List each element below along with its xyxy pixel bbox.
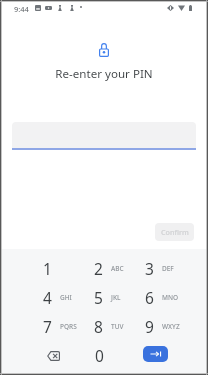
staticText: TUV: [111, 322, 124, 331]
staticText: 3: [145, 258, 154, 279]
staticText: MNO: [162, 293, 179, 302]
button[interactable]: 6: [124, 283, 175, 312]
staticText: PQRS: [60, 322, 77, 331]
staticText: 0: [95, 345, 104, 366]
button[interactable]: 0: [77, 341, 122, 370]
staticText: WXYZ: [162, 322, 180, 331]
staticText: 5: [94, 287, 103, 308]
button[interactable]: 9: [124, 312, 175, 341]
staticText: 6: [145, 287, 154, 308]
staticText: GHI: [60, 293, 72, 302]
button[interactable]: 8: [73, 312, 124, 341]
staticText: JKL: [111, 293, 121, 302]
staticText: Confirm: [161, 227, 189, 237]
button[interactable]: 5: [73, 283, 124, 312]
staticText: 1: [43, 258, 52, 279]
staticText: 2: [94, 258, 103, 279]
staticText: 9:44: [14, 4, 29, 14]
staticText: DEF: [162, 264, 174, 273]
button[interactable]: Next: [143, 346, 168, 362]
button[interactable]: 1: [22, 254, 73, 283]
staticText: 8: [94, 316, 103, 337]
staticText: Re-enter your PIN: [0, 66, 208, 82]
button[interactable]: 7: [22, 312, 73, 341]
button[interactable]: Backspace: [31, 341, 75, 370]
button[interactable]: 4: [22, 283, 73, 312]
button[interactable]: Confirm: [155, 223, 194, 241]
button[interactable]: 2: [73, 254, 124, 283]
button[interactable]: 3: [124, 254, 175, 283]
staticText: 9: [145, 316, 154, 337]
staticText: 4: [43, 287, 52, 308]
staticText: 7: [43, 316, 52, 337]
staticText: ABC: [111, 264, 124, 273]
